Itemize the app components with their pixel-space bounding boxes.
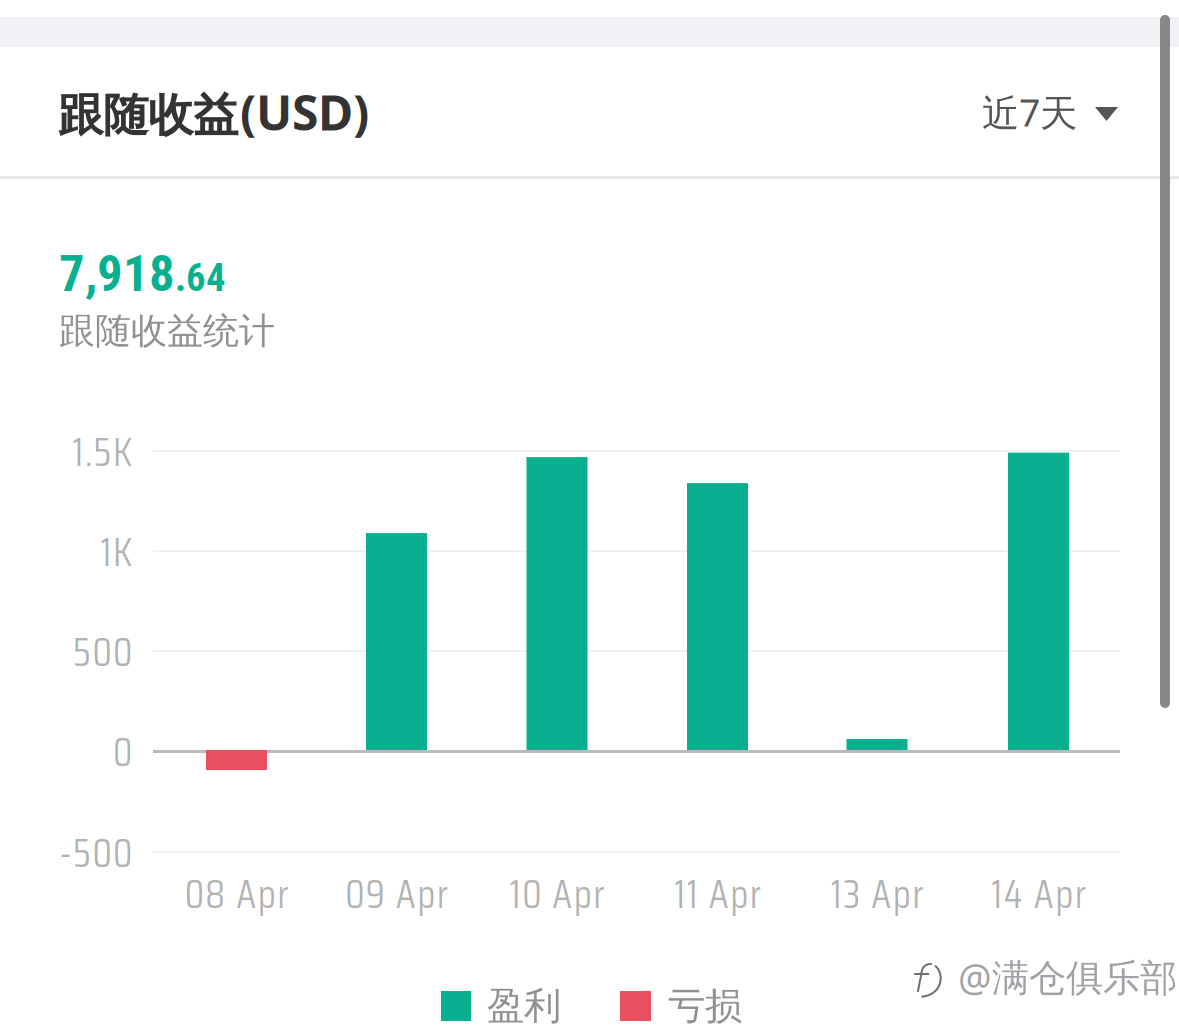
staticText: 1K: [100, 520, 132, 583]
staticText: 13 Apr: [831, 862, 923, 925]
button[interactable]: 10 Apr 盈利: [526, 457, 587, 750]
button[interactable]: 13 Apr 盈利: [846, 739, 907, 750]
staticText: 14 Apr: [991, 862, 1086, 925]
staticText: 跟随收益: [58, 88, 238, 143]
staticText: 08 Apr: [185, 862, 288, 925]
staticText: 10 Apr: [510, 862, 604, 925]
staticText: 11 Apr: [674, 862, 761, 925]
button[interactable]: 亏损: [620, 983, 742, 1029]
staticText: -500: [59, 821, 132, 884]
staticText: 亏损: [668, 983, 742, 1029]
staticText: 盈利: [487, 983, 561, 1029]
button[interactable]: 近7天: [908, 57, 1118, 167]
staticText: 0: [113, 720, 132, 783]
button[interactable]: 盈利: [441, 983, 561, 1029]
staticText: .64: [175, 255, 226, 300]
staticText: 近7天: [982, 87, 1077, 137]
staticText: (USD): [240, 80, 369, 144]
staticText: 500: [73, 620, 132, 683]
staticText: 09 Apr: [345, 862, 448, 925]
staticText: 1.5K: [72, 420, 132, 483]
staticText: @满仓俱乐部: [958, 952, 1177, 1002]
staticText: 7,918: [59, 244, 175, 303]
staticText: 跟随收益统计: [59, 309, 275, 353]
